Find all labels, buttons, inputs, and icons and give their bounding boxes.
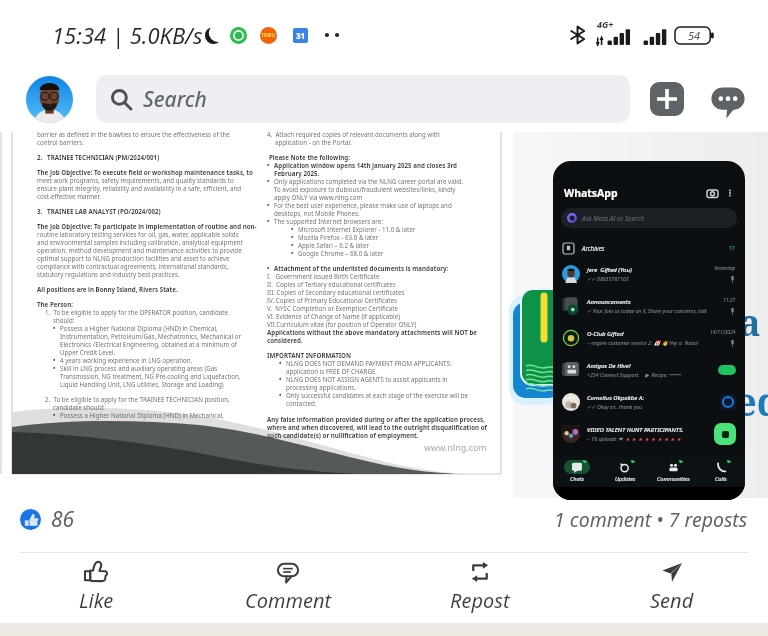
staticText: Electronics /Electrical Engineering, obt… (60, 340, 237, 348)
staticText: considered. (267, 336, 303, 344)
button[interactable]: 86 (51, 505, 75, 534)
staticText: O-Club Gifted (587, 330, 624, 338)
staticText: TEMU (261, 32, 276, 39)
staticText: • (291, 225, 294, 233)
button[interactable]: Chats (553, 460, 601, 483)
staticText: Like (79, 587, 114, 614)
staticText: 4. Attach required copies of relevant do… (267, 130, 440, 138)
button[interactable]: Repost (384, 553, 576, 623)
staticText: IV. Copies of Primary Educational Certif… (267, 296, 398, 304)
button[interactable]: Reactions (20, 509, 41, 530)
staticText: 14/11/2024 (710, 329, 736, 336)
staticText: II. Copies of Tertiary educational certi… (267, 280, 396, 288)
button[interactable]: Jere Gifted (You) (562, 258, 736, 290)
staticText: ~ 10 uploads ❤ 🔺🔺🔺🔺🔺🔺🔺🔺🔺 (587, 435, 683, 442)
staticText: For the best user experience, please mak… (274, 201, 452, 209)
button[interactable]: VIDEO TALENT HUNT PARTICIPANTS. (562, 418, 736, 450)
staticText: Archives (582, 244, 605, 252)
staticText: 4G+ (597, 18, 614, 30)
staticText: www.nlng.com (424, 441, 487, 453)
staticText: 31 (296, 30, 306, 41)
staticText: cost-effective manner. (37, 192, 101, 200)
staticText: Amigos De Hive! (587, 362, 631, 370)
button[interactable]: Announcements (562, 290, 736, 322)
staticText: To avoid exposure to dubious/fraudulent … (274, 185, 456, 193)
button[interactable]: Messenger (710, 81, 746, 117)
staticText: barrier as defined in the bowties to ens… (37, 130, 230, 138)
button[interactable]: a (513, 132, 768, 498)
staticText: Send (650, 587, 694, 614)
button[interactable]: Comment (192, 553, 384, 623)
staticText: • (267, 161, 270, 169)
button[interactable]: Comelius Okpokbe A: (562, 386, 736, 418)
staticText: Upper Credit Level. (60, 348, 116, 356)
button[interactable]: Create (650, 82, 684, 116)
staticText: • (53, 324, 56, 332)
button[interactable]: Updates (601, 460, 649, 483)
staticText: Applications without the above mandatory… (267, 328, 478, 336)
staticText: • (291, 241, 294, 249)
button[interactable]: O-Club Gifted (562, 322, 736, 354)
button[interactable]: Like (0, 553, 192, 623)
button[interactable]: Calls (697, 460, 745, 483)
staticText: application - on the Portal. (275, 138, 352, 146)
button[interactable]: Amigos De Hive! (562, 354, 736, 386)
staticText: apply ONLY via www.nlng.com (274, 193, 363, 201)
staticText: Transmission, NG treatment, NG Pre-cooli… (60, 372, 241, 380)
staticText: Jere Gifted (You) (587, 266, 632, 274)
staticText: • (267, 217, 270, 225)
staticText: • (267, 264, 270, 272)
staticText: should: (53, 316, 75, 324)
staticText: statutory regulations and industry best … (37, 270, 180, 278)
staticText: Chats (570, 475, 584, 483)
staticText: contacted. (286, 399, 317, 407)
staticText: NLNG DOES NOT ASSIGN AGENTS to assist ap… (286, 375, 448, 383)
staticText: February 2025. (274, 169, 320, 177)
button[interactable]: barrier as defined in the bowties to ens… (1, 132, 510, 483)
staticText: Comelius Okpokbe A: (587, 394, 645, 402)
staticText: Liquid Handling Unit, LNG utilities, Sto… (60, 380, 224, 388)
staticText: Please Note the following: (269, 153, 350, 161)
staticText: Attachment of the underlisted documents … (274, 264, 449, 272)
staticText: Possess a Higher National Diploma (HND) … (60, 411, 224, 419)
staticText: The supported Internet browsers are: (274, 217, 383, 225)
button[interactable]: Profile (26, 76, 73, 123)
staticText: • (279, 391, 282, 399)
staticText: ed (735, 375, 768, 427)
staticText: • (279, 375, 282, 383)
staticText: • (291, 249, 294, 257)
staticText: All positions are in Bonny Island, River… (37, 285, 178, 293)
button[interactable]: 1 comment • 7 reposts (554, 506, 748, 533)
staticText: • (53, 364, 56, 372)
button[interactable]: Search (96, 75, 630, 123)
staticText: Skill in LNG process and auxiliary opera… (60, 364, 218, 372)
staticText: Apple Safari – 6.2 & later (298, 241, 370, 249)
staticText: 1. To be eligible to apply for the OPERA… (45, 308, 228, 316)
staticText: Microsoft Internet Explorer - 11.0 & lat… (298, 225, 416, 233)
staticText: NLNG DOES NOT DEMAND PAYMENT FROM APPLIC… (286, 359, 452, 367)
staticText: III. Copies of Secondary educational cer… (267, 288, 405, 296)
staticText: ✓ Your Join us today on X, Share your co… (587, 307, 719, 314)
staticText: ensure plant integrity, reliability and … (37, 184, 242, 192)
staticText: +234 Connect Support. ▶ Recipe: •••••• (587, 371, 681, 378)
button[interactable]: Send (576, 553, 768, 623)
staticText: The Job Objective: To execute field or w… (37, 168, 253, 176)
staticText: I. Government issued Birth Certificate (267, 272, 380, 280)
staticText: VII.Curriculum vitae (for position of Op… (267, 320, 417, 328)
staticText: Any false information provided during or… (267, 415, 485, 423)
staticText: ~ engine customer service 2: 📅 👋 Hey a N… (587, 339, 706, 346)
staticText: Mozilla Firefox - 63.0 & later (298, 233, 379, 241)
staticText: Application window opens 14th January 20… (274, 161, 457, 169)
staticText: Google Chrome – 68.0 & later (298, 249, 384, 257)
staticText: VI. Evidence of Change of Name (if appli… (267, 312, 401, 320)
staticText: meet work programs, safety requirements,… (37, 176, 234, 184)
staticText: • (267, 177, 270, 185)
staticText: and environmental samples including cali… (37, 238, 243, 246)
staticText: Possess a Higher National Diploma (HND) … (60, 324, 218, 332)
staticText: such candidate(s) or nullification of em… (267, 431, 419, 439)
button[interactable]: Communities (649, 460, 697, 483)
staticText: Announcements (587, 298, 631, 306)
staticText: Comment (245, 587, 332, 614)
staticText: ✓✓ Okay sir.. thank you (587, 403, 643, 410)
staticText: Only successful candidates at each stage… (286, 391, 469, 399)
